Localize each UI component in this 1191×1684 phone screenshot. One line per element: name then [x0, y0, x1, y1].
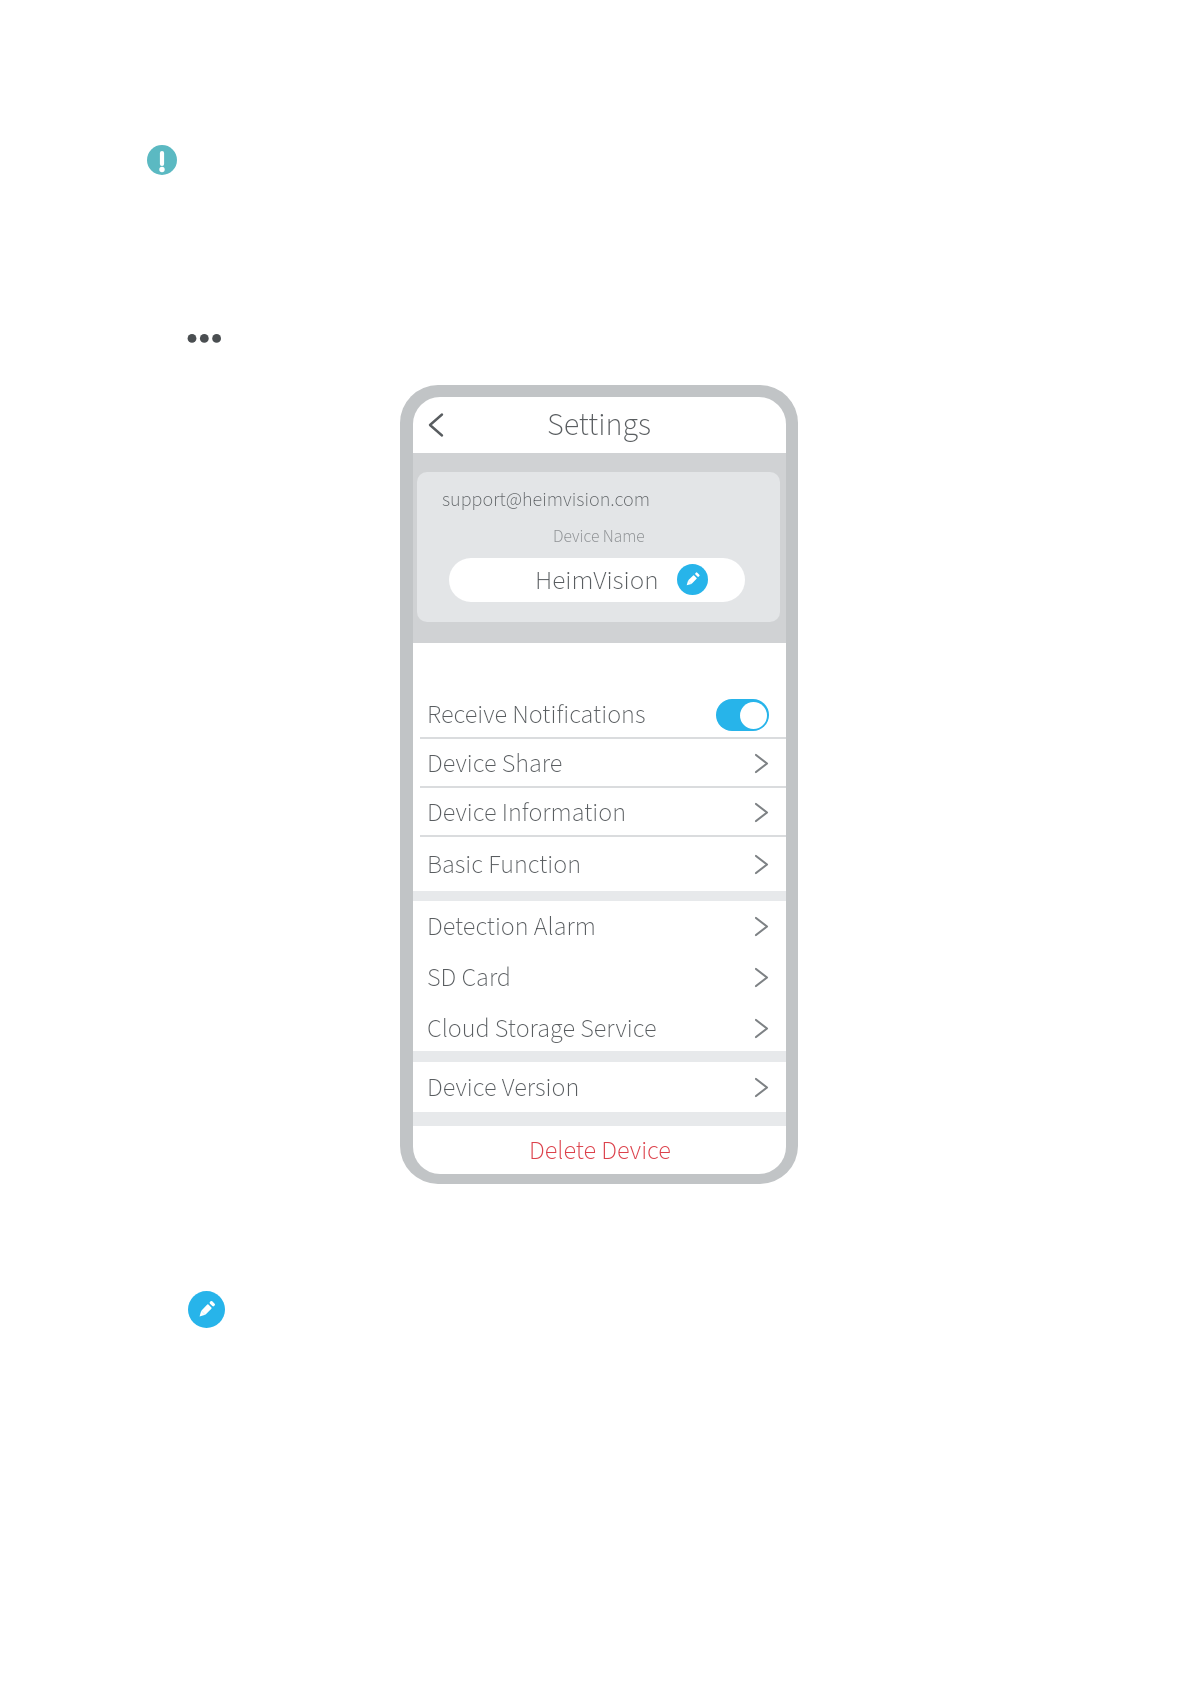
button[interactable]	[677, 564, 708, 595]
button[interactable]: HeimVision	[449, 558, 745, 602]
button[interactable]	[421, 410, 451, 440]
staticText: Delete Device	[529, 1132, 671, 1169]
staticText: Receive Notifications	[427, 696, 646, 733]
staticText: Device Information	[427, 794, 626, 831]
staticText: Settings	[547, 402, 652, 448]
button[interactable]: SD Card	[413, 951, 786, 1003]
staticText: support@heimvision.com	[442, 486, 651, 514]
button[interactable]: Detection Alarm	[413, 901, 786, 951]
button[interactable]: Device Share	[413, 739, 786, 788]
button[interactable]: Basic Function	[413, 837, 786, 892]
button[interactable]	[716, 699, 769, 731]
staticText: Basic Function	[427, 846, 581, 883]
staticText: HeimVision	[535, 561, 659, 599]
staticText: Detection Alarm	[427, 908, 596, 945]
staticText: Device Version	[427, 1069, 580, 1106]
staticText: Cloud Storage Service	[427, 1010, 657, 1047]
button[interactable]: Receive Notifications	[413, 690, 786, 739]
staticText: Device Share	[427, 745, 563, 782]
button[interactable]: Delete Device	[413, 1126, 786, 1174]
button[interactable]: Device Version	[413, 1062, 786, 1112]
button[interactable]	[188, 1291, 225, 1328]
button[interactable]: Device Information	[413, 788, 786, 837]
button[interactable]: Cloud Storage Service	[413, 1006, 786, 1051]
staticText: Device Name	[553, 524, 645, 548]
staticText: SD Card	[427, 959, 512, 996]
